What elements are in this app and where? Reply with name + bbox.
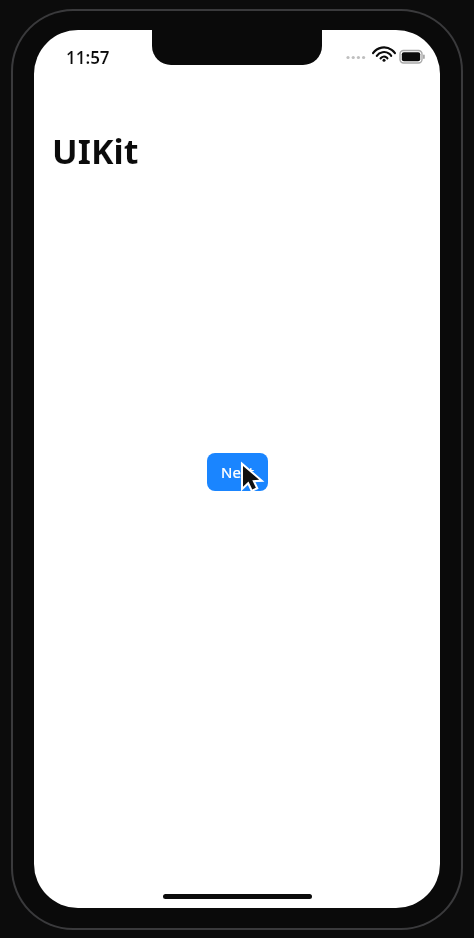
other: Pointer <box>243 466 265 494</box>
button[interactable]: Next <box>207 453 268 491</box>
staticText: 11:57 <box>66 46 110 68</box>
staticText: Next <box>221 462 254 482</box>
staticText: UIKit <box>52 128 139 174</box>
